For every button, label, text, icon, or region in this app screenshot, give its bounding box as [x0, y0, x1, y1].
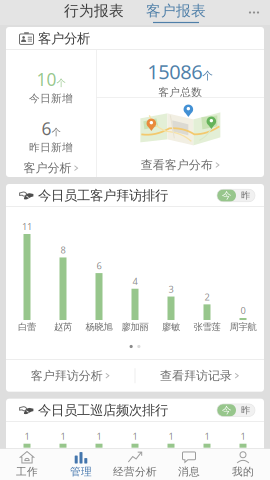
staticText: 赵芮 [54, 321, 72, 333]
button[interactable]: 工作 [0, 448, 54, 480]
button[interactable]: 今 [217, 404, 236, 416]
staticText: 1 [132, 430, 137, 442]
button[interactable]: 客户报表 [146, 1, 206, 24]
staticText: 6 [41, 117, 51, 140]
staticText: 今日员工巡店频次排行 [38, 402, 168, 418]
staticText: 昨 [241, 404, 250, 416]
staticText: 经营分析 [113, 465, 157, 478]
button[interactable]: 昨 [236, 189, 255, 202]
staticText: 10 [36, 68, 56, 91]
staticText: 工作 [16, 465, 38, 478]
staticText: 廖加丽 [121, 321, 148, 333]
button[interactable]: 消息 [162, 448, 216, 480]
button[interactable]: More options [238, 0, 270, 24]
button[interactable]: 经营分析 [108, 448, 162, 480]
staticText: 6 [96, 259, 101, 272]
staticText: 1 [24, 430, 29, 442]
staticText: 消息 [178, 465, 200, 478]
button[interactable]: 客户拜访分析 [6, 360, 135, 392]
button[interactable]: 昨 [236, 404, 255, 416]
staticText: 杨晓旭 [85, 321, 112, 333]
staticText: 客户总数 [158, 86, 202, 99]
staticText: 客户分析 [38, 30, 90, 47]
staticText: 3 [168, 283, 173, 295]
staticText: 管理 [70, 465, 92, 478]
button[interactable]: 今 [217, 189, 236, 202]
staticText: 2 [204, 291, 209, 303]
staticText: 15086 [147, 58, 202, 85]
staticText: 查看拜访记录 [160, 368, 232, 383]
staticText: 昨 [241, 190, 250, 201]
button[interactable]: 行为报表 [64, 1, 124, 24]
button[interactable]: 查看拜访记录 [135, 360, 264, 392]
staticText: 周宇航 [229, 321, 256, 333]
staticText: 查看客户分布 [141, 158, 213, 172]
staticText: 个 [51, 126, 60, 138]
staticText: 白蕾 [18, 321, 36, 333]
staticText: 个 [202, 69, 213, 82]
staticText: 1 [240, 430, 245, 442]
button[interactable]: 客户分析 [6, 154, 96, 182]
staticText: 昨日新增 [29, 141, 73, 154]
staticText: 行为报表 [64, 2, 124, 20]
button[interactable]: 我的 [216, 448, 270, 480]
staticText: 个 [56, 77, 65, 89]
staticText: 廖敏 [162, 321, 180, 333]
staticText: 11 [22, 220, 32, 233]
staticText: 1 [168, 430, 173, 442]
staticText: 1 [204, 430, 209, 442]
staticText: 今日员工客户拜访排行 [38, 187, 168, 204]
staticText: 客户报表 [146, 2, 206, 20]
staticText: 1 [60, 430, 65, 442]
staticText: 1 [96, 430, 101, 442]
staticText: 今 [222, 190, 231, 201]
button[interactable]: 查看客户分布 [97, 153, 264, 177]
staticText: 今日新增 [29, 92, 73, 105]
staticText: 我的 [232, 465, 254, 478]
button[interactable]: 管理 [54, 448, 108, 480]
staticText: 4 [132, 275, 137, 287]
staticText: 0 [240, 304, 245, 317]
staticText: 今 [222, 404, 231, 416]
staticText: 客户拜访分析 [31, 368, 103, 383]
staticText: 张雪莲 [193, 321, 220, 333]
staticText: 客户分析 [23, 161, 71, 175]
staticText: 8 [60, 244, 65, 256]
